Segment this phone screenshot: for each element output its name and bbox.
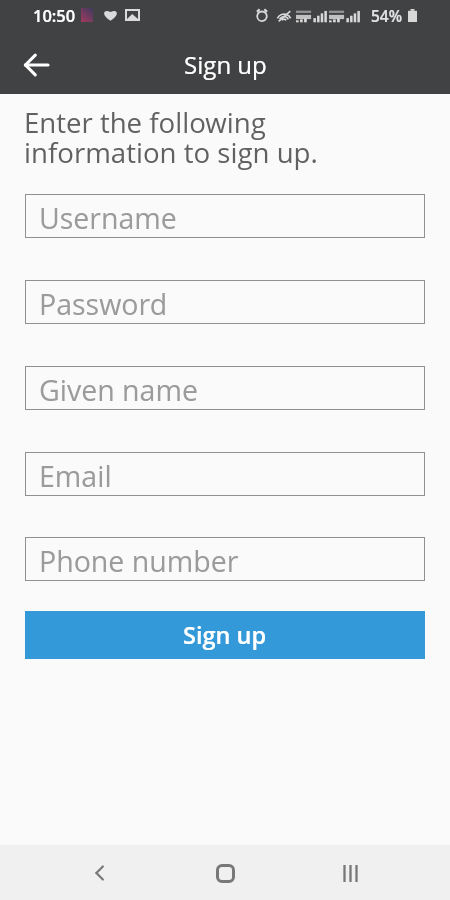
staticText: Email [39, 457, 112, 496]
button[interactable]: Email [25, 452, 425, 496]
staticText: Password [39, 285, 168, 324]
button[interactable]: Sign up [25, 611, 425, 659]
staticText: Given name [39, 371, 198, 410]
staticText: Sign up [184, 48, 267, 81]
button[interactable]: Navigate back [12, 41, 60, 89]
staticText: Username [39, 199, 177, 238]
staticText: Phone number [39, 542, 239, 581]
button[interactable]: Phone number [25, 537, 425, 581]
button[interactable]: Password [25, 280, 425, 324]
staticText: 10:50 [33, 4, 76, 26]
button[interactable]: Back [75, 848, 125, 898]
staticText: 54% [371, 5, 403, 26]
staticText: Sign up [183, 619, 267, 651]
button[interactable]: Recent apps [325, 848, 375, 898]
staticText: Enter the following information to sign … [24, 103, 318, 171]
button[interactable]: Given name [25, 366, 425, 410]
button[interactable]: Home [200, 848, 250, 898]
button[interactable]: Username [25, 194, 425, 238]
